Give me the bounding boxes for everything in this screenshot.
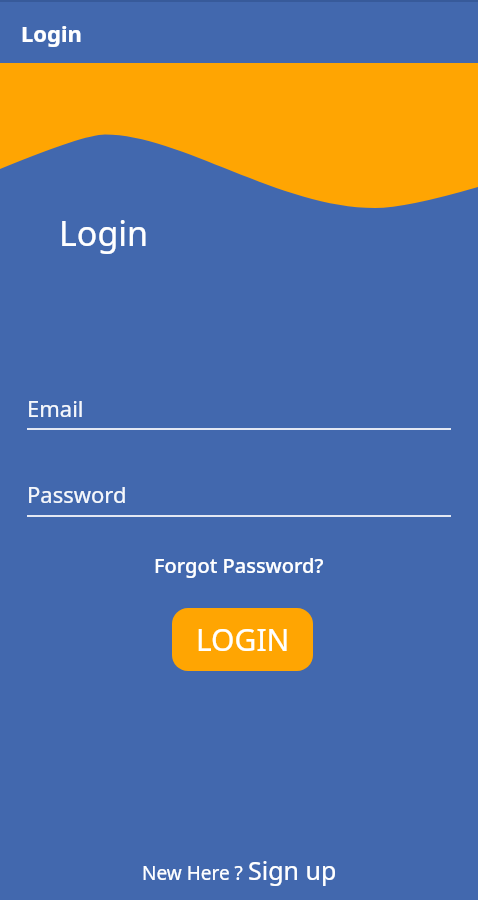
button[interactable]: Password <box>27 479 451 517</box>
button[interactable]: Forgot Password? <box>154 552 324 579</box>
staticText: Login <box>59 210 149 256</box>
button[interactable]: New Here ? <box>142 853 337 887</box>
staticText: Password <box>27 479 127 509</box>
button[interactable]: LOGIN <box>172 608 313 671</box>
staticText: Sign up <box>248 853 337 887</box>
staticText: Login <box>21 18 82 48</box>
button[interactable]: Email <box>27 393 451 430</box>
staticText: LOGIN <box>196 619 290 660</box>
staticText: New Here ? <box>142 860 248 886</box>
staticText: Email <box>27 393 84 423</box>
